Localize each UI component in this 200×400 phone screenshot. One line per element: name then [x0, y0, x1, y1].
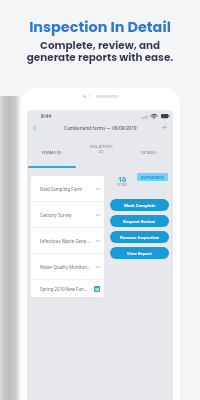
- button[interactable]: DETAILS: [124, 134, 173, 168]
- button[interactable]: Sanitary Survey: [31, 202, 104, 227]
- staticText: Inspection In Detail: [0, 17, 200, 37]
- staticText: Water Quality Monitori...: [40, 264, 94, 270]
- button[interactable]: Infectious Waste Gene...: [31, 228, 104, 253]
- staticText: VIOLATIONS (2): [89, 144, 113, 155]
- button[interactable]: Back: [30, 123, 39, 132]
- button[interactable]: Field Sampling Form: [31, 176, 104, 201]
- staticText: Infectious Waste Gene...: [40, 238, 94, 244]
- staticText: 8:44: [41, 113, 51, 120]
- staticText: Mark Complete: [124, 202, 156, 208]
- button[interactable]: Water Quality Monitori...: [31, 254, 104, 279]
- staticText: Remove Inspection: [120, 234, 160, 240]
- staticText: SCORE: [114, 183, 130, 187]
- button[interactable]: Remove Inspection: [110, 231, 169, 243]
- button[interactable]: Mark Complete: [110, 199, 169, 211]
- staticText: 13: [95, 287, 99, 292]
- button[interactable]: VIOLATIONS (2): [76, 134, 125, 168]
- staticText: Request Review: [123, 218, 156, 224]
- staticText: View Report: [127, 250, 152, 256]
- staticText: Spring 2019 New Fun...: [40, 286, 92, 292]
- staticText: Sanitary Survey: [40, 212, 94, 218]
- staticText: IN PROGRESS: [141, 175, 165, 180]
- button[interactable]: Add inspection: [160, 123, 169, 132]
- staticText: Cumberland farms — 06/09/2019: [64, 125, 137, 131]
- staticText: Field Sampling Form: [40, 186, 94, 192]
- button[interactable]: IN PROGRESS: [137, 173, 168, 181]
- staticText: 10: [114, 174, 130, 184]
- staticText: FORMS (5): [42, 150, 62, 155]
- button[interactable]: Request Review: [110, 215, 169, 227]
- staticText: Complete, review, and generate reports w…: [0, 38, 200, 65]
- button[interactable]: Spring 2019 New Fun...: [31, 280, 104, 297]
- staticText: DETAILS: [141, 150, 157, 155]
- button[interactable]: View Report: [110, 247, 169, 259]
- button[interactable]: FORMS (5): [27, 134, 76, 168]
